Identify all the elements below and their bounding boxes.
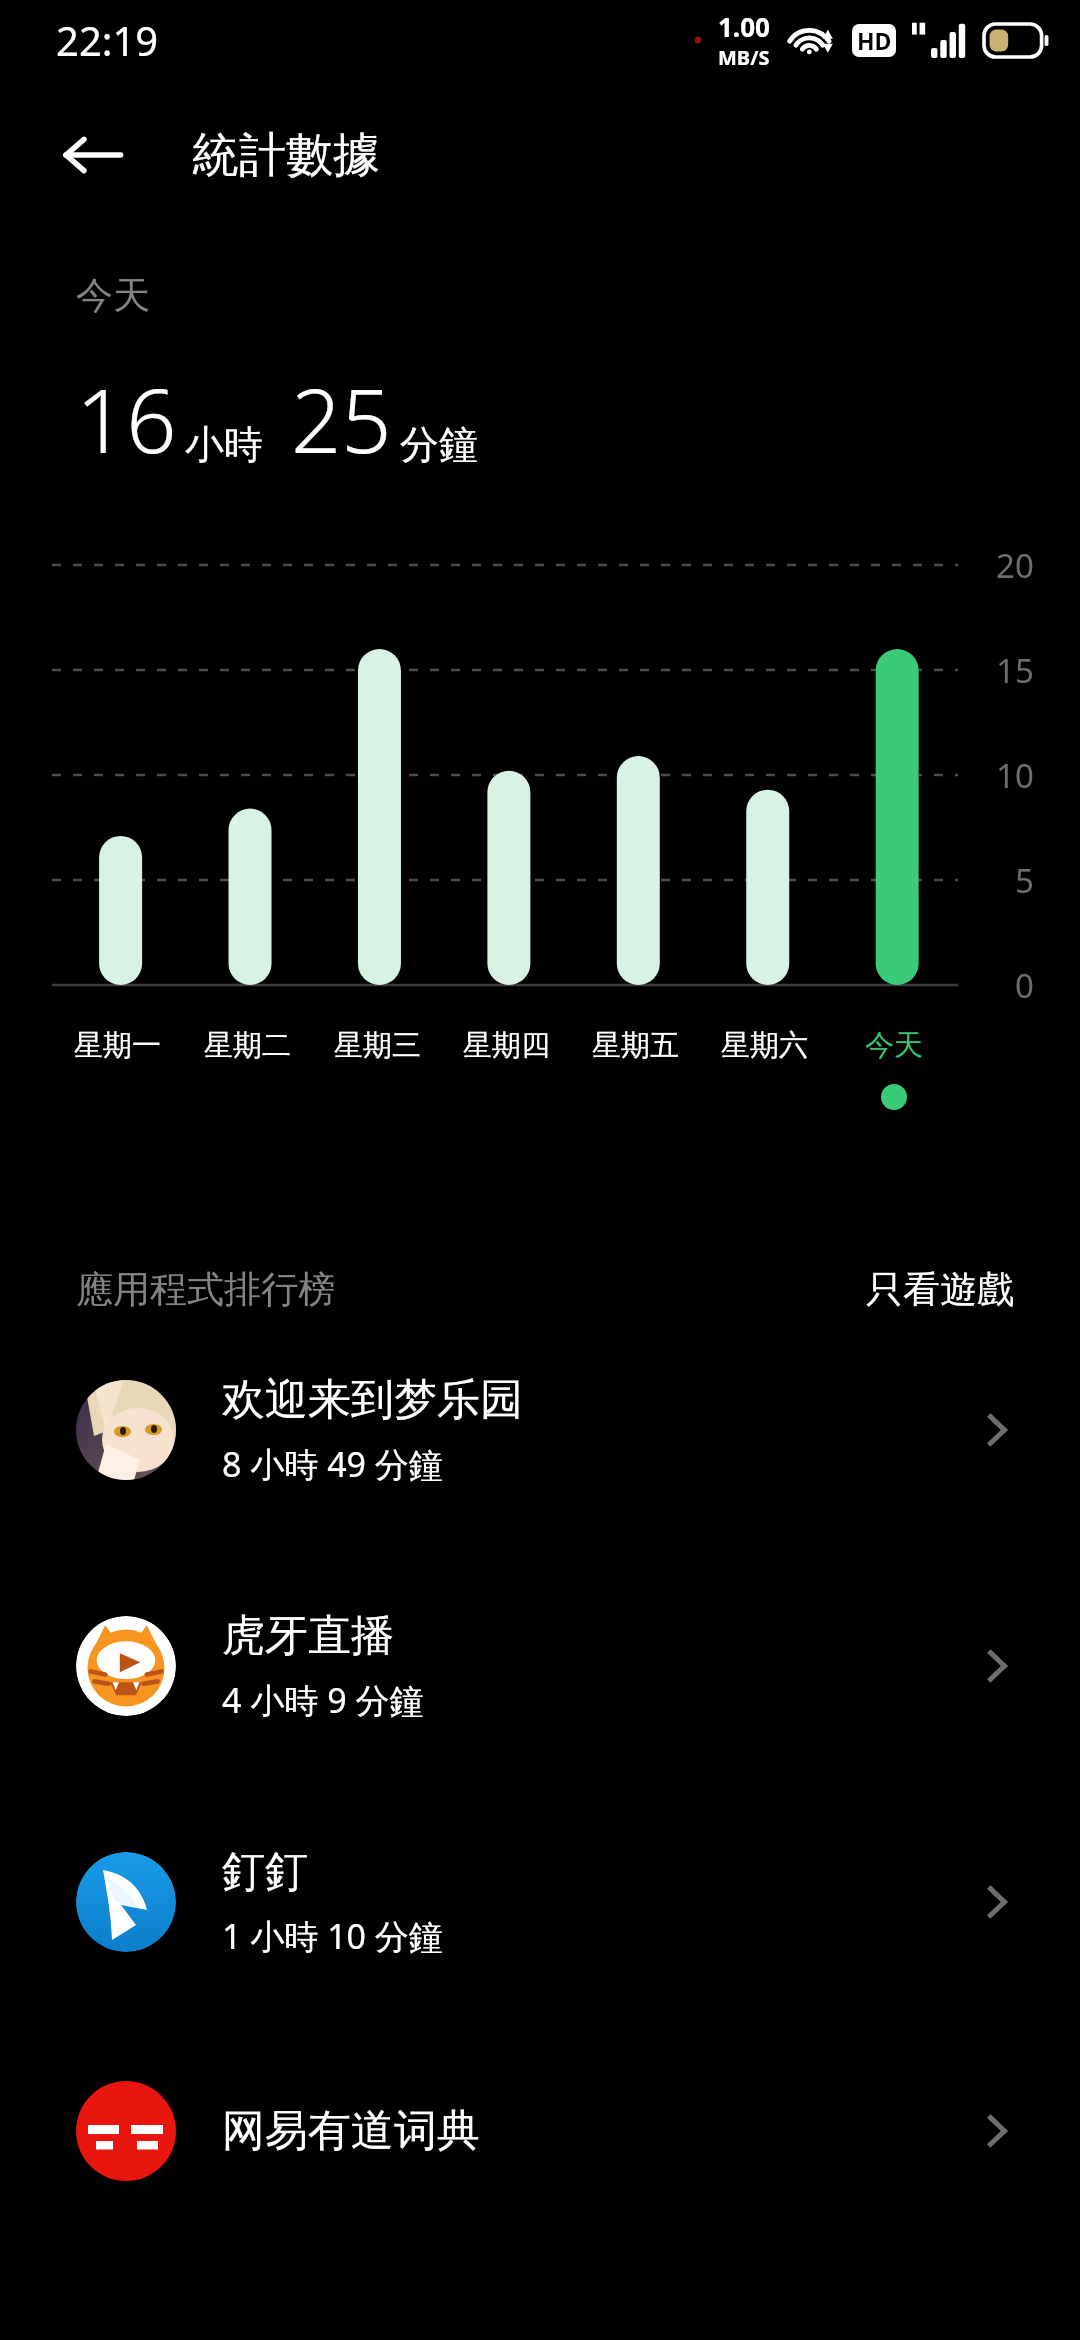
button[interactable]: 虎牙直播	[0, 1609, 1080, 1723]
button[interactable]: 网易有道词典	[0, 2081, 1080, 2181]
button[interactable]: Back	[48, 110, 138, 200]
button[interactable]: 欢迎来到梦乐园	[0, 1373, 1080, 1487]
staticText: 5	[1015, 858, 1034, 903]
staticText: 4 小時 9 分鐘	[222, 1677, 424, 1723]
staticText: 星期三	[334, 1027, 421, 1064]
staticText: 今天	[76, 272, 150, 319]
button[interactable]: 只看遊戲	[858, 1260, 1022, 1319]
staticText: 星期二	[204, 1027, 291, 1064]
other: Details	[978, 2108, 1024, 2154]
other: Details	[978, 1879, 1024, 1925]
staticText: 0	[1015, 963, 1034, 1008]
staticText: 今天	[865, 1027, 923, 1064]
staticText: 分鐘	[400, 420, 478, 469]
staticText: 15	[996, 648, 1034, 693]
staticText: 星期五	[592, 1027, 679, 1064]
staticText: 25	[291, 359, 392, 479]
staticText: 虎牙直播	[222, 1609, 394, 1663]
staticText: 1.00	[718, 9, 770, 44]
staticText: 星期六	[721, 1027, 808, 1064]
staticText: 欢迎来到梦乐园	[222, 1373, 523, 1427]
other: Details	[978, 1407, 1024, 1453]
staticText: 10	[996, 753, 1034, 798]
button[interactable]: 釘釘	[0, 1845, 1080, 1959]
staticText: 應用程式排行榜	[76, 1266, 335, 1313]
staticText: 1 小時 10 分鐘	[222, 1913, 443, 1959]
staticText: 統計數據	[192, 126, 380, 185]
staticText: 22:19	[56, 13, 159, 67]
staticText: 16	[76, 359, 177, 479]
staticText: 8 小時 49 分鐘	[222, 1441, 443, 1487]
staticText: MB/S	[718, 44, 770, 71]
staticText: 星期四	[463, 1027, 550, 1064]
staticText: 20	[996, 543, 1034, 588]
staticText: 星期一	[74, 1027, 161, 1064]
staticText: HD	[857, 25, 892, 56]
other: Details	[978, 1643, 1024, 1689]
staticText: 只看遊戲	[866, 1266, 1014, 1313]
staticText: 小時	[185, 420, 263, 469]
staticText: 网易有道词典	[222, 2104, 480, 2158]
staticText: 釘釘	[222, 1845, 308, 1899]
